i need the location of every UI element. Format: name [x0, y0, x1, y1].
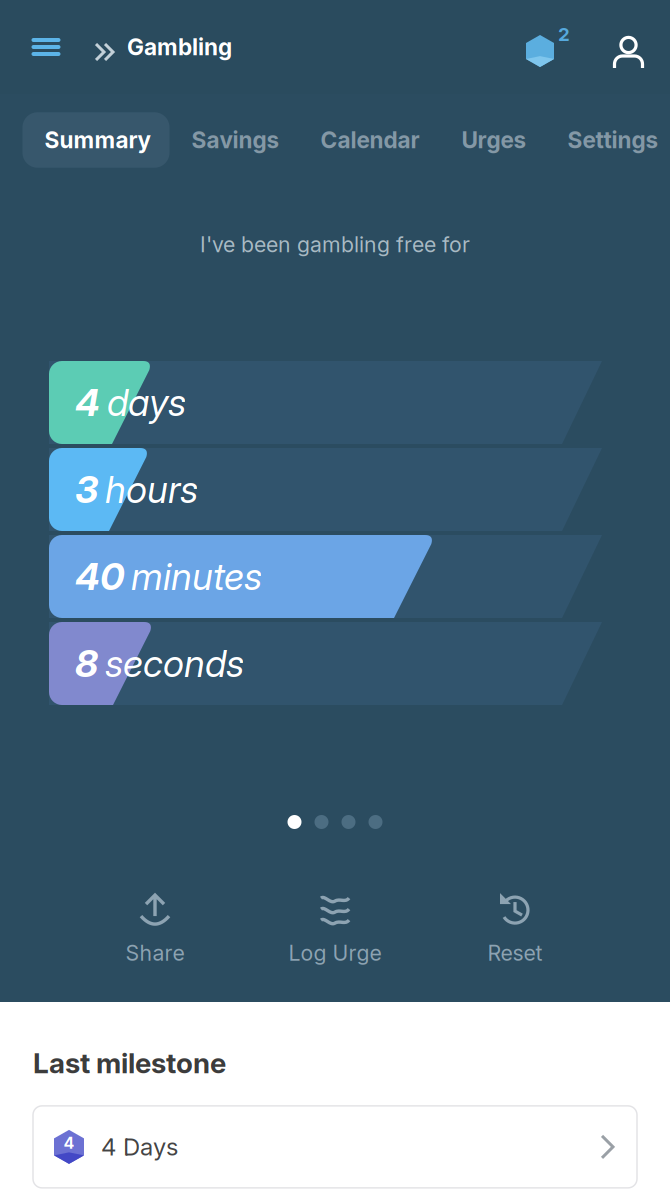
button[interactable]: Urges: [440, 112, 546, 168]
staticText: 4: [63, 1133, 74, 1153]
button[interactable]: Gambling: [84, 0, 238, 94]
button[interactable]: Calendar: [299, 112, 440, 168]
staticText: Savings: [191, 126, 279, 154]
button[interactable]: Share: [65, 896, 245, 962]
staticText: 40: [75, 554, 124, 599]
staticText: I've been gambling free for: [200, 232, 470, 257]
staticText: days: [107, 380, 186, 425]
staticText: Log Urge: [288, 940, 381, 966]
button[interactable]: Log Urge: [245, 896, 425, 962]
button[interactable]: Settings: [546, 112, 670, 168]
staticText: minutes: [131, 554, 262, 599]
staticText: Settings: [567, 126, 658, 154]
staticText: Share: [125, 940, 184, 966]
button[interactable]: Savings: [169, 112, 299, 168]
staticText: Last milestone: [33, 1046, 226, 1080]
button[interactable]: Menu: [0, 0, 84, 94]
button[interactable]: Profile: [599, 0, 659, 94]
staticText: hours: [105, 467, 198, 512]
staticText: 4 Days: [101, 1132, 178, 1161]
staticText: 4: [75, 380, 100, 425]
staticText: Summary: [44, 126, 150, 154]
button[interactable]: Reset: [425, 896, 605, 962]
staticText: Reset: [487, 940, 542, 966]
button[interactable]: Summary: [22, 112, 169, 168]
staticText: 8: [75, 641, 98, 686]
button[interactable]: 4: [33, 1106, 637, 1188]
staticText: seconds: [105, 641, 244, 686]
staticText: 3: [75, 467, 98, 512]
staticText: Gambling: [127, 33, 232, 61]
staticText: Calendar: [320, 126, 419, 154]
staticText: Urges: [461, 126, 526, 154]
staticText: 2: [558, 23, 570, 46]
button[interactable]: Badges: [526, 0, 599, 94]
